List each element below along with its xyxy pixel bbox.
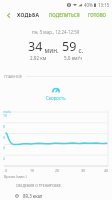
staticText: 10 bbox=[30, 168, 35, 173]
staticText: 8 bbox=[3, 124, 6, 129]
staticText: 4 bbox=[3, 145, 6, 150]
staticText: мин. bbox=[43, 46, 59, 54]
staticText: 13:15 bbox=[98, 2, 110, 8]
button[interactable]: 89,3 ккал bbox=[0, 193, 112, 199]
staticText: 2,92 км bbox=[30, 55, 47, 61]
staticText: Время (мин.) bbox=[4, 174, 27, 179]
staticText: 6 bbox=[3, 135, 6, 140]
staticText: км/ч bbox=[3, 109, 12, 114]
button[interactable]: Скорость bbox=[40, 85, 72, 102]
staticText: ГОТОВО bbox=[88, 12, 107, 18]
staticText: ГЛАВНОЕ bbox=[4, 74, 23, 79]
staticText: 10 bbox=[3, 113, 8, 118]
staticText: ХОДЬБА bbox=[17, 12, 40, 19]
staticText: 30 bbox=[81, 168, 86, 173]
staticText: 0 bbox=[5, 168, 8, 173]
staticText: СВЕДЕНИЯ О ТРЕНИРОВКЕ bbox=[16, 183, 61, 187]
staticText: 89,3 ккал bbox=[23, 193, 43, 199]
staticText: 5,0 км/ч bbox=[64, 55, 83, 61]
staticText: 2 bbox=[3, 156, 6, 161]
staticText: 34 bbox=[28, 38, 43, 55]
staticText: 40% bbox=[84, 2, 93, 8]
button[interactable]: Back bbox=[0, 9, 17, 21]
button[interactable]: ГОТОВО bbox=[82, 9, 112, 21]
staticText: 20 bbox=[55, 168, 60, 173]
staticText: с. bbox=[77, 46, 84, 54]
staticText: Скорость bbox=[46, 95, 66, 101]
staticText: 59 bbox=[62, 38, 77, 55]
button[interactable]: ПОДЕЛИТЬСЯ bbox=[47, 9, 82, 21]
staticText: ПОДЕЛИТЬСЯ bbox=[49, 12, 80, 18]
staticText: 40 bbox=[104, 168, 109, 173]
staticText: пн, 5 мар., 12:24-12:59 bbox=[32, 29, 80, 35]
